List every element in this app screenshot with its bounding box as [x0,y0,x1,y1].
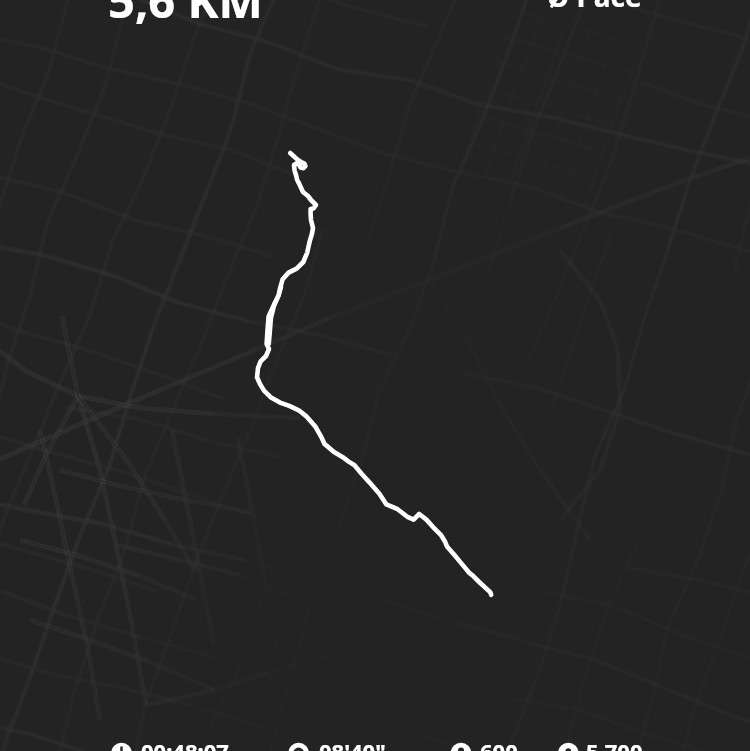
staticText: 5,6 KM [108,0,263,32]
staticText: 08'40" [319,736,386,751]
staticText: 5.700 [586,736,643,751]
staticText: 00:48:07 [141,736,229,751]
staticText: 600 [480,736,518,751]
staticText: Ø Pace [547,0,642,15]
